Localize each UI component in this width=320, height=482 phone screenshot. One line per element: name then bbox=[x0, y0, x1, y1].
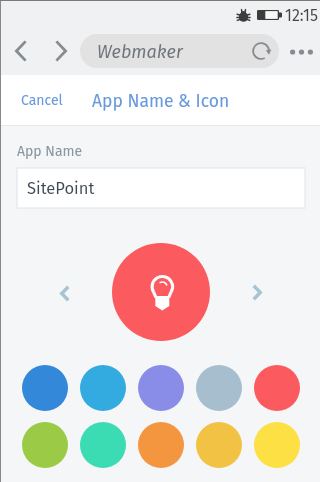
staticText: Webmaker bbox=[97, 41, 183, 63]
button[interactable]: Forward bbox=[47, 37, 75, 65]
staticText: SitePoint bbox=[27, 179, 95, 199]
button[interactable]: Next icon bbox=[242, 278, 272, 307]
button[interactable]: Colour swatch bbox=[80, 422, 126, 468]
button[interactable]: Webmaker bbox=[80, 34, 279, 68]
button[interactable]: App icon bbox=[112, 243, 210, 341]
button[interactable]: Colour swatch bbox=[138, 365, 184, 411]
button[interactable]: More options bbox=[286, 38, 316, 65]
button[interactable]: Colour swatch bbox=[138, 422, 184, 468]
button[interactable]: Colour swatch bbox=[196, 422, 242, 468]
button[interactable]: Cancel bbox=[12, 87, 72, 114]
staticText: Cancel bbox=[21, 92, 63, 109]
staticText: 12:15 bbox=[285, 6, 318, 25]
button[interactable]: Back bbox=[7, 37, 35, 65]
button[interactable]: Reload bbox=[247, 37, 275, 65]
button[interactable]: Colour swatch bbox=[196, 365, 242, 411]
button[interactable]: SitePoint bbox=[17, 168, 305, 208]
button[interactable]: Colour swatch bbox=[254, 365, 300, 411]
button[interactable]: Colour swatch bbox=[80, 365, 126, 411]
button[interactable]: Colour swatch bbox=[22, 422, 68, 468]
button[interactable]: Colour swatch bbox=[22, 365, 68, 411]
staticText: App Name bbox=[17, 143, 83, 160]
button[interactable]: Colour swatch bbox=[254, 422, 300, 468]
button[interactable]: Previous icon bbox=[50, 279, 80, 308]
staticText: App Name & Icon bbox=[92, 91, 230, 112]
